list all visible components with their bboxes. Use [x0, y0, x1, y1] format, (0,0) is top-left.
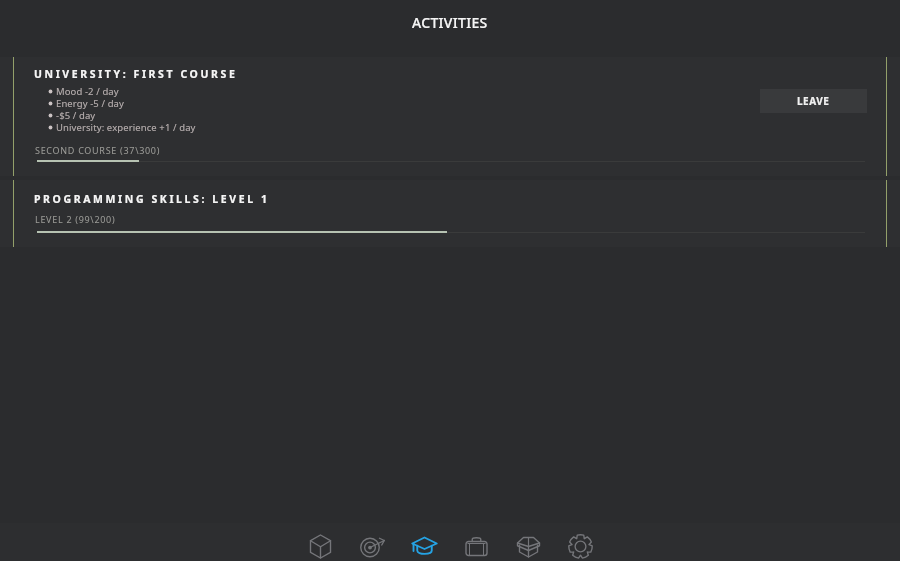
staticText: ACTIVITIES [412, 13, 488, 32]
staticText: Energy -5 / day [56, 97, 124, 109]
button[interactable]: LEAVE [760, 89, 867, 113]
button[interactable]: Goals [346, 523, 398, 561]
staticText: UNIVERSITY: FIRST COURSE [34, 67, 238, 81]
staticText: LEAVE [797, 94, 830, 108]
button[interactable]: Inventory [294, 523, 346, 561]
staticText: University: experience +1 / day [56, 121, 196, 133]
staticText: LEVEL 2 (99\200) [35, 213, 116, 225]
staticText: SECOND COURSE (37\300) [35, 144, 161, 156]
button[interactable]: Shop [502, 523, 554, 561]
button[interactable]: Activities [398, 523, 450, 561]
button[interactable]: Work [450, 523, 502, 561]
button[interactable]: Settings [554, 523, 606, 561]
staticText: Mood -2 / day [56, 85, 119, 97]
staticText: PROGRAMMING SKILLS: LEVEL 1 [34, 192, 270, 206]
staticText: -$5 / day [56, 109, 96, 121]
